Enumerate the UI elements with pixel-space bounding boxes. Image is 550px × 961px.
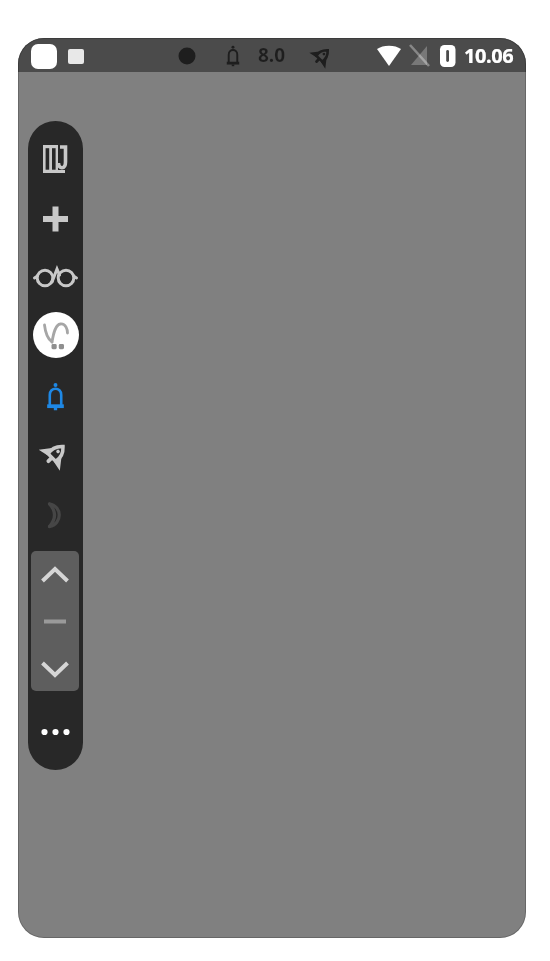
button[interactable]: Notifications [28,373,83,419]
button[interactable]: Decrease [31,647,79,691]
button[interactable]: Reset [31,599,79,644]
button[interactable]: Night mode [28,492,83,538]
button[interactable]: Reading glasses [28,254,83,300]
button[interactable]: Increase [31,551,79,599]
button[interactable]: Library [28,137,83,183]
staticText: 8.0 [258,42,286,68]
button[interactable]: Add [28,196,83,242]
button[interactable]: Boost [28,431,83,477]
staticText: 10.06 [464,42,514,69]
button[interactable]: Focus mode [33,312,79,358]
button[interactable]: More options [28,710,83,754]
